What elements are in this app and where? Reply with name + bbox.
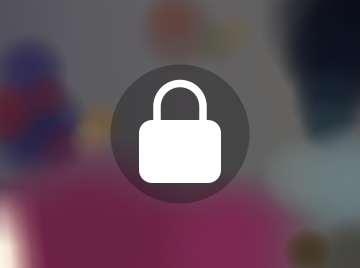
- button[interactable]: Content locked: [110, 64, 249, 203]
